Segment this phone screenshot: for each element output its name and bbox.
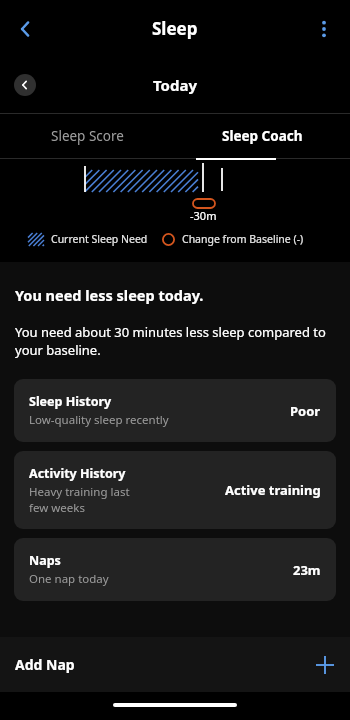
button[interactable]: Activity History <box>14 451 336 529</box>
staticText: Active training <box>225 481 321 499</box>
staticText: Activity History <box>29 465 126 482</box>
staticText: Sleep History <box>29 393 112 410</box>
staticText: Change from Baseline (-) <box>182 232 304 246</box>
button[interactable]: Sleep Coach <box>175 114 350 158</box>
staticText: You need less sleep today. <box>15 285 204 305</box>
staticText: Low-quality sleep recently <box>29 412 169 428</box>
staticText: Current Sleep Need <box>51 232 148 246</box>
staticText: Add Nap <box>15 655 75 674</box>
staticText: Poor <box>290 402 321 420</box>
staticText: Sleep Score <box>51 127 124 145</box>
button[interactable]: Sleep Score <box>0 114 175 158</box>
staticText: Naps <box>29 552 61 569</box>
staticText: Heavy training last few weeks <box>29 484 130 515</box>
staticText: One nap today <box>29 571 109 587</box>
staticText: Sleep Coach <box>222 127 303 145</box>
staticText: 23m <box>293 561 321 579</box>
staticText: -30m <box>190 208 217 223</box>
button[interactable]: More options <box>306 11 342 47</box>
staticText: Today <box>153 75 198 95</box>
staticText: You need about 30 minutes less sleep com… <box>15 323 332 359</box>
button[interactable]: Add Nap <box>0 637 350 692</box>
button[interactable]: Sleep History <box>14 379 336 442</box>
button[interactable]: Naps <box>14 538 336 601</box>
button[interactable]: Back <box>6 9 46 49</box>
button[interactable]: Previous day <box>14 74 36 96</box>
staticText: Sleep <box>152 17 198 40</box>
